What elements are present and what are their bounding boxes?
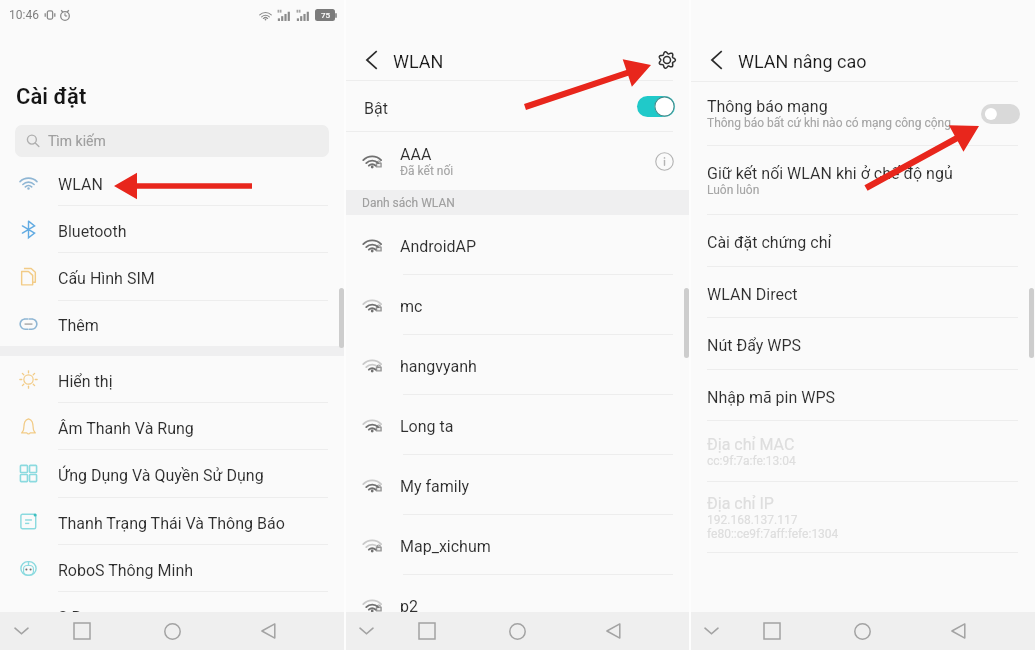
staticText: My family: [400, 477, 470, 496]
button[interactable]: hangvyanh: [345, 335, 690, 394]
button[interactable]: Ứng Dụng Và Quyền Sử Dụng: [0, 450, 345, 497]
staticText: Âm Thanh Và Rung: [58, 419, 194, 438]
button[interactable]: mc: [345, 275, 690, 334]
button[interactable]: Home: [840, 612, 884, 650]
button[interactable]: Bluetooth: [0, 206, 345, 252]
staticText: 192.168.137.117: [707, 513, 798, 527]
button[interactable]: Hiển thị: [0, 356, 345, 402]
button[interactable]: Giữ kết nối WLAN khi ở chế độ ngủ: [690, 146, 1035, 214]
button[interactable]: Home: [150, 612, 194, 650]
button[interactable]: Nút Đẩy WPS: [690, 318, 1035, 369]
staticText: AndroidAP: [400, 237, 477, 256]
staticText: WLAN Direct: [707, 285, 798, 304]
button[interactable]: Hide keyboard: [5, 612, 37, 650]
button[interactable]: p2: [345, 575, 690, 634]
staticText: Địa chỉ MAC: [707, 435, 795, 454]
button[interactable]: Map_xichum: [345, 515, 690, 574]
staticText: Thêm: [58, 316, 99, 335]
staticText: Long ta: [400, 417, 454, 436]
staticText: RoboS Thông Minh: [58, 561, 194, 580]
staticText: cc:9f:7a:fe:13:04: [707, 454, 796, 468]
button[interactable]: Nhập mã pin WPS: [690, 370, 1035, 420]
button[interactable]: My family: [345, 455, 690, 514]
button[interactable]: Âm Thanh Và Rung: [0, 403, 345, 449]
staticText: Luôn luôn: [707, 183, 760, 197]
button[interactable]: Thanh Trạng Thái Và Thông Báo: [0, 498, 345, 544]
button[interactable]: Back: [591, 612, 635, 650]
staticText: WLAN: [393, 51, 444, 72]
staticText: Hiển thị: [58, 372, 113, 391]
staticText: Map_xichum: [400, 537, 491, 556]
staticText: Đã kết nối: [400, 164, 454, 178]
staticText: WLAN nâng cao: [738, 51, 867, 72]
button[interactable]: Bật: [345, 81, 690, 131]
button[interactable]: Hide keyboard: [350, 612, 382, 650]
staticText: Bật: [364, 99, 388, 118]
button[interactable]: Back: [702, 46, 730, 74]
staticText: p2: [400, 597, 418, 616]
button[interactable]: Back: [357, 46, 385, 74]
staticText: Tìm kiếm: [48, 133, 106, 149]
staticText: Nhập mã pin WPS: [707, 388, 836, 407]
staticText: Thông báo mạng: [707, 97, 828, 116]
button[interactable]: Back: [246, 612, 290, 650]
staticText: AAA: [400, 145, 432, 164]
button[interactable]: Recent apps: [60, 612, 104, 650]
staticText: mc: [400, 297, 423, 316]
button[interactable]: Thêm: [0, 301, 345, 346]
button[interactable]: Hide keyboard: [695, 612, 727, 650]
button[interactable]: Long ta: [345, 395, 690, 454]
button[interactable]: Network notification off: [981, 104, 1020, 124]
staticText: hangvyanh: [400, 357, 477, 376]
button[interactable]: Home: [495, 612, 539, 650]
button[interactable]: Địa chỉ IP: [690, 482, 1035, 552]
button[interactable]: Thông báo mạng: [690, 82, 1035, 145]
staticText: Cấu Hình SIM: [58, 269, 155, 288]
staticText: Thanh Trạng Thái Và Thông Báo: [58, 514, 285, 533]
button[interactable]: Settings: [652, 45, 682, 75]
button[interactable]: RoboS Thông Minh: [0, 545, 345, 591]
button[interactable]: Địa chỉ MAC: [690, 421, 1035, 481]
staticText: S Boost: [58, 608, 114, 627]
staticText: 75: [321, 11, 330, 20]
staticText: Cài đặt chứng chỉ: [707, 233, 832, 252]
button[interactable]: Network details: [651, 148, 677, 174]
button[interactable]: Tìm kiếm: [15, 125, 329, 157]
button[interactable]: Back: [936, 612, 980, 650]
staticText: Ứng Dụng Và Quyền Sử Dụng: [58, 466, 264, 485]
staticText: Cài đặt: [16, 84, 87, 110]
button[interactable]: Recent apps: [750, 612, 794, 650]
staticText: Thông báo bất cứ khi nào có mạng công cộ…: [707, 116, 951, 130]
button[interactable]: AndroidAP: [345, 215, 690, 274]
button[interactable]: Cấu Hình SIM: [0, 253, 345, 300]
staticText: Danh sách WLAN: [362, 196, 455, 210]
button[interactable]: WLAN: [0, 159, 345, 205]
staticText: Giữ kết nối WLAN khi ở chế độ ngủ: [707, 164, 953, 183]
button[interactable]: WLAN on: [637, 96, 675, 117]
staticText: Nút Đẩy WPS: [707, 336, 802, 355]
button[interactable]: WLAN Direct: [690, 267, 1035, 317]
staticText: Địa chỉ IP: [707, 494, 774, 513]
staticText: fe80::ce9f:7aff:fefe:1304: [707, 527, 839, 541]
staticText: Bluetooth: [58, 222, 127, 241]
button[interactable]: S Boost: [0, 592, 345, 638]
staticText: WLAN: [58, 175, 103, 194]
button[interactable]: Cài đặt chứng chỉ: [690, 215, 1035, 266]
staticText: 10:46: [9, 8, 39, 22]
button[interactable]: Recent apps: [405, 612, 449, 650]
button[interactable]: AAA: [345, 132, 690, 190]
